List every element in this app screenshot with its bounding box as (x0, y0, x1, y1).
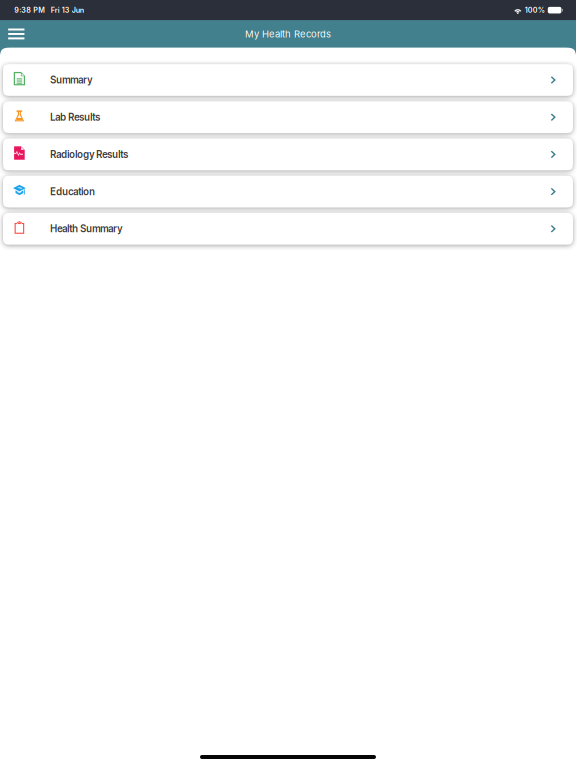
button[interactable]: Open menu (0, 20, 33, 48)
staticText: Radiology Results (50, 148, 128, 160)
button[interactable]: Radiology Results (3, 138, 573, 170)
button[interactable]: Lab Results (3, 101, 573, 133)
button[interactable]: Education (3, 176, 573, 207)
staticText: Education (50, 186, 95, 197)
staticText: 100% (525, 6, 545, 14)
staticText: My Health Records (245, 28, 331, 40)
staticText: 9:38 PM (14, 6, 45, 14)
button[interactable]: Summary (3, 64, 573, 96)
staticText: Fri 13 Jun (51, 6, 84, 14)
staticText: Summary (50, 74, 92, 86)
staticText: Lab Results (50, 111, 100, 123)
staticText: Health Summary (50, 223, 122, 235)
button[interactable]: Health Summary (3, 213, 573, 245)
